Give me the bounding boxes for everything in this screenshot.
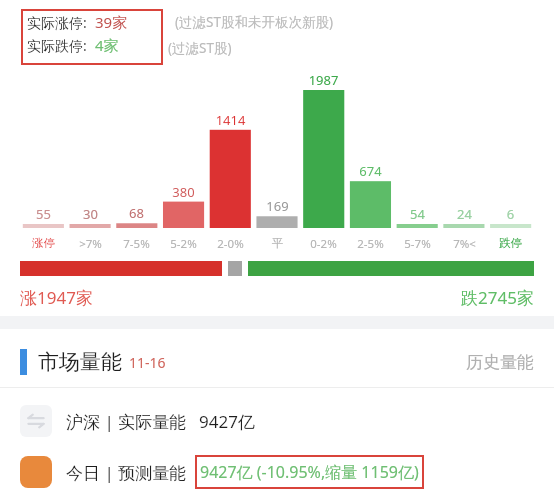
staticText: 涨1947家 xyxy=(20,286,93,309)
staticText: 沪深 | 实际量能 xyxy=(66,410,187,433)
button[interactable]: 平 xyxy=(254,236,301,250)
button[interactable]: 交换 xyxy=(0,398,554,444)
staticText: >7% xyxy=(67,236,114,252)
button[interactable]: >7% xyxy=(67,236,114,252)
staticText: 平 xyxy=(254,236,301,250)
staticText: (过滤ST股) xyxy=(168,39,232,57)
staticText: (过滤ST股和未开板次新股) xyxy=(175,13,334,31)
other: 今日预测 xyxy=(20,456,52,488)
button[interactable]: 7-5% xyxy=(113,236,160,252)
staticText: 7%< xyxy=(441,236,488,252)
button[interactable]: 跌停 xyxy=(487,236,534,250)
staticText: 5-2% xyxy=(160,236,207,252)
button[interactable]: 实际涨停: xyxy=(21,9,163,65)
button[interactable]: 2-0% xyxy=(207,236,254,252)
staticText: 380 xyxy=(160,183,207,201)
button[interactable]: 2-5% xyxy=(347,236,394,252)
staticText: 涨停 xyxy=(20,236,67,250)
button[interactable]: 5-7% xyxy=(394,236,441,252)
other: 交换 xyxy=(20,405,52,437)
staticText: 跌停 xyxy=(487,236,534,250)
staticText: 5-7% xyxy=(394,236,441,252)
staticText: 1414 xyxy=(207,111,254,129)
staticText: 11-16 xyxy=(129,353,166,372)
button[interactable]: 0-2% xyxy=(300,236,347,252)
button[interactable]: 市场量能 xyxy=(0,340,554,384)
staticText: 2-0% xyxy=(207,236,254,252)
staticText: 市场量能 xyxy=(38,349,122,375)
button[interactable]: 5-2% xyxy=(160,236,207,252)
staticText: 9427亿 xyxy=(199,410,255,433)
button[interactable]: 7%< xyxy=(441,236,488,252)
staticText: 54 xyxy=(394,205,441,223)
button[interactable]: 涨停 xyxy=(20,236,67,250)
staticText: 39家 xyxy=(95,12,128,32)
button[interactable]: 今日预测 xyxy=(0,450,554,494)
staticText: 30 xyxy=(67,205,114,223)
staticText: 实际涨停: xyxy=(27,13,87,32)
staticText: 6 xyxy=(487,205,534,223)
staticText: 24 xyxy=(441,205,488,223)
staticText: 4家 xyxy=(95,35,119,55)
staticText: 2-5% xyxy=(347,236,394,252)
staticText: 1987 xyxy=(300,71,347,89)
staticText: 55 xyxy=(20,205,67,223)
staticText: 9427亿 (-10.95%,缩量 1159亿) xyxy=(200,461,419,483)
staticText: 7-5% xyxy=(113,236,160,252)
staticText: 实际跌停: xyxy=(27,36,87,55)
staticText: 跌2745家 xyxy=(380,286,534,309)
staticText: 674 xyxy=(347,162,394,180)
staticText: 68 xyxy=(113,204,160,222)
staticText: 今日 | 预测量能 xyxy=(66,461,187,484)
staticText: 历史量能 xyxy=(466,352,534,373)
staticText: 0-2% xyxy=(300,236,347,252)
staticText: 169 xyxy=(254,197,301,215)
